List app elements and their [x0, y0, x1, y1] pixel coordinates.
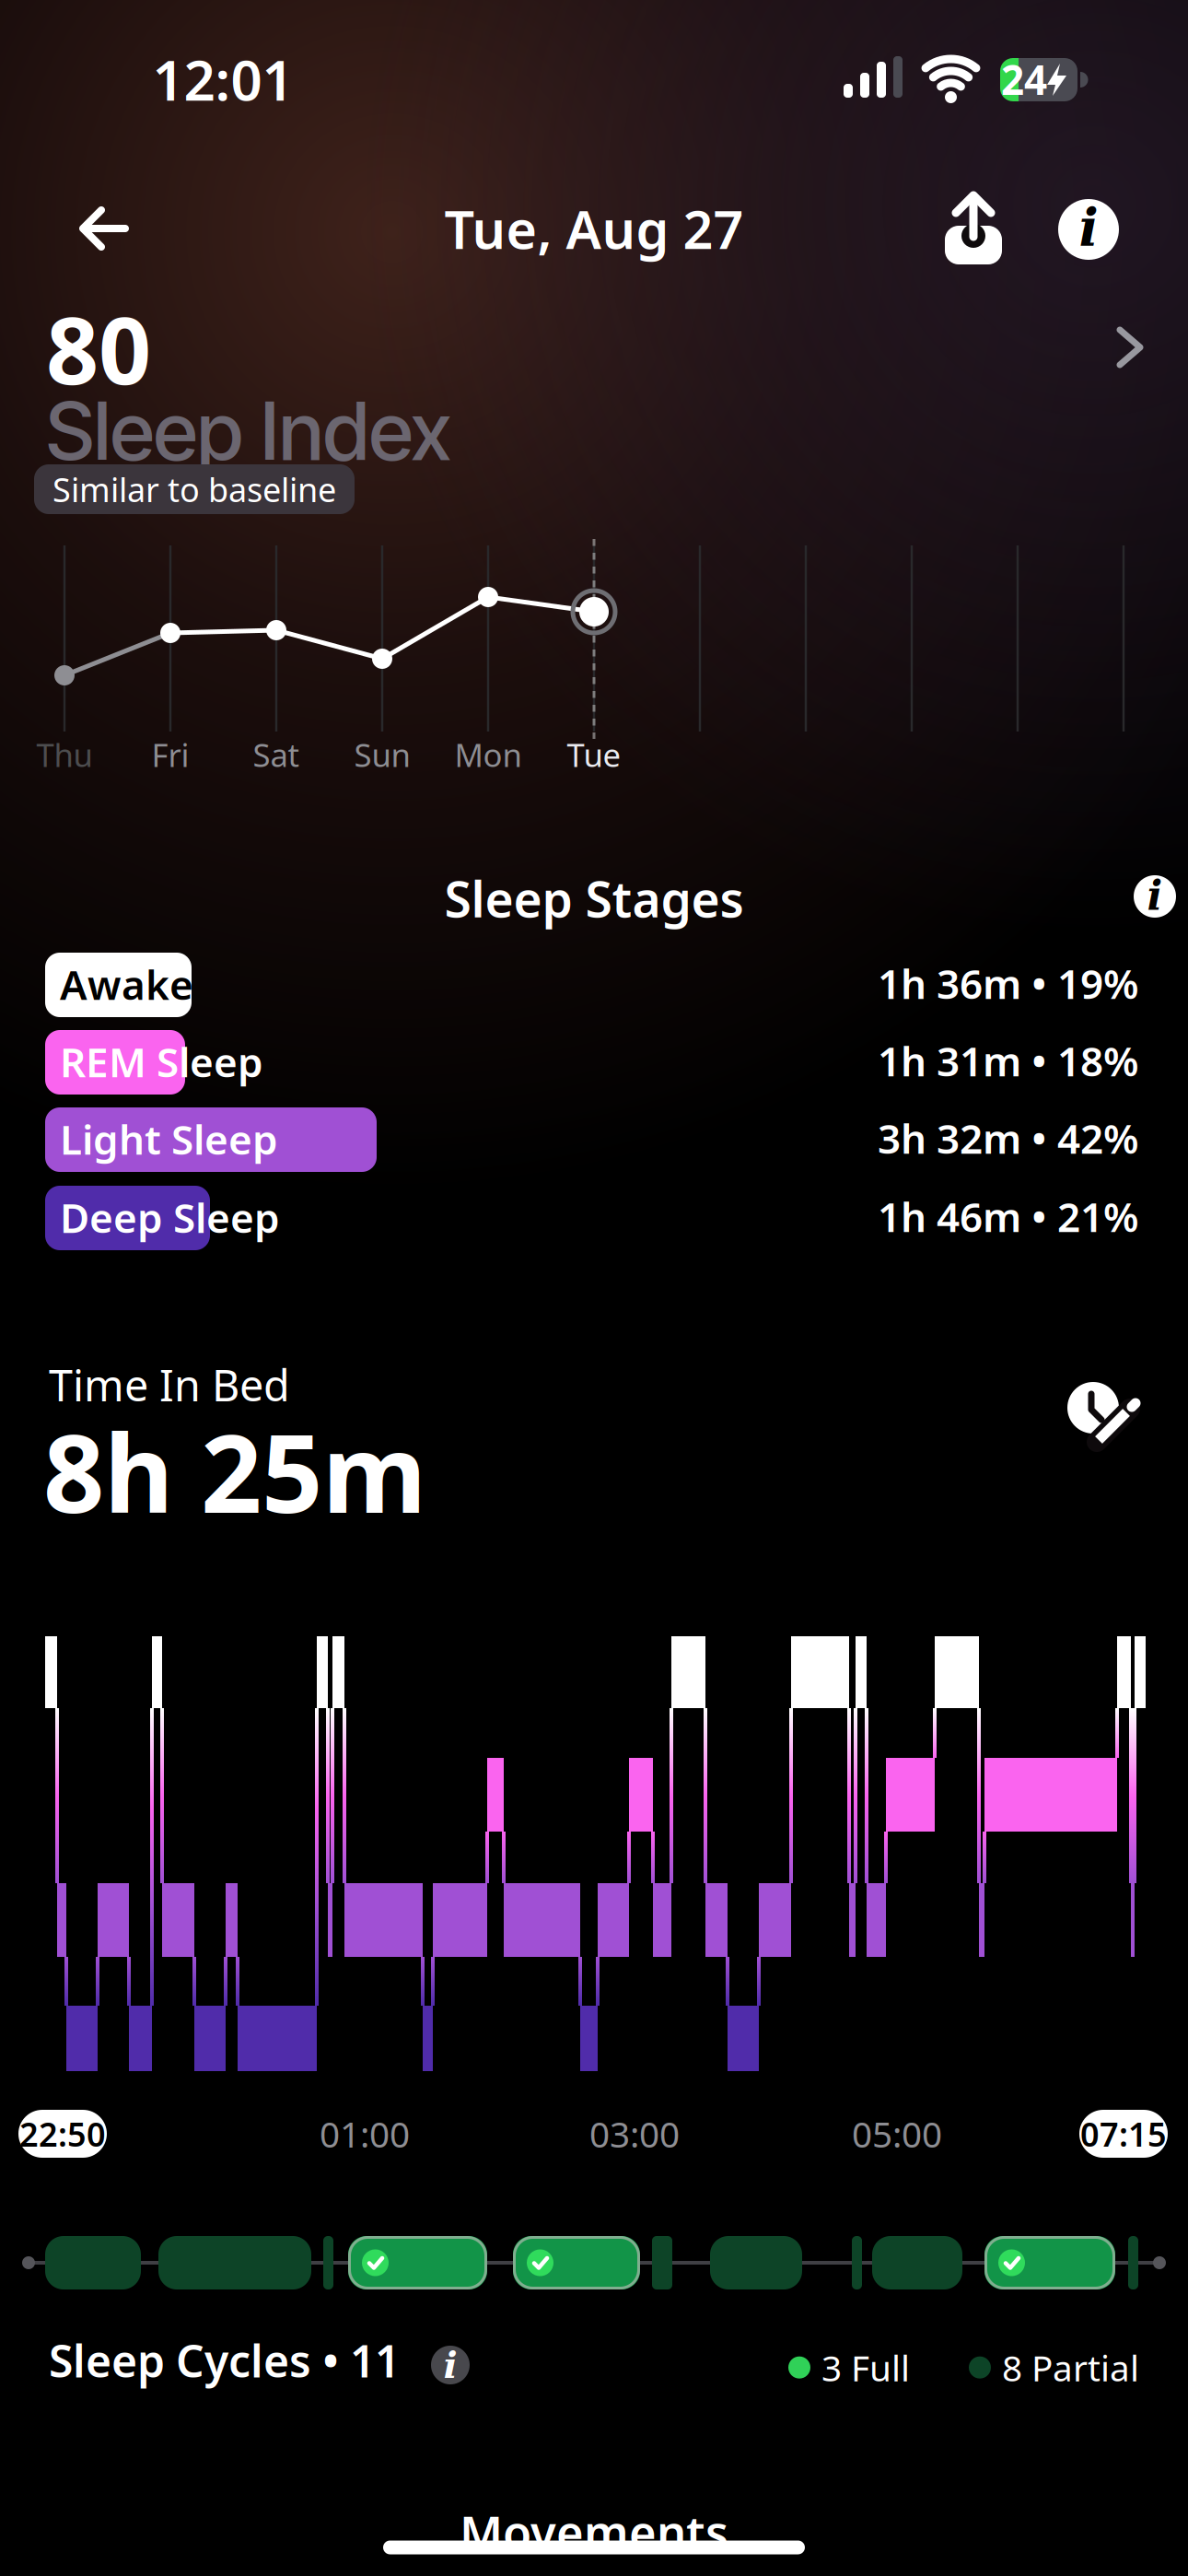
button[interactable]: 80 [34, 279, 1158, 524]
staticText: REM Sleep [60, 1035, 263, 1088]
staticText: 24 [1001, 52, 1047, 106]
staticText: Sleep Index [46, 382, 451, 479]
staticText: Movements [460, 2501, 728, 2563]
button[interactable]: Back [83, 201, 125, 256]
staticText: 07:15 [1080, 2112, 1167, 2156]
staticText: Sleep Cycles • 11 [49, 2331, 400, 2390]
staticText: 1h 46m • 21% [878, 1189, 1139, 1243]
staticText: 80 [46, 287, 151, 410]
staticText: i [1147, 872, 1163, 919]
staticText: Sat [253, 733, 300, 776]
staticText: 03:00 [589, 2110, 680, 2157]
staticText: 22:50 [19, 2112, 106, 2156]
staticText: Awake [60, 957, 193, 1011]
button[interactable]: Info [1058, 199, 1119, 260]
staticText: i [443, 2343, 457, 2387]
staticText: Tue [567, 733, 621, 776]
button[interactable]: Share [936, 189, 1009, 272]
staticText: Fri [151, 733, 189, 776]
staticText: 1h 31m • 18% [878, 1034, 1139, 1088]
staticText: 8h 25m [43, 1400, 426, 1542]
staticText: Sun [354, 733, 410, 776]
staticText: 3 Full [821, 2344, 910, 2391]
staticText: Deep Sleep [60, 1190, 280, 1244]
staticText: Thu [36, 733, 93, 776]
button[interactable]: Sleep cycles info [431, 2346, 470, 2384]
staticText: Tue, Aug 27 [444, 193, 744, 263]
staticText: 8 Partial [1002, 2344, 1139, 2391]
staticText: 3h 32m • 42% [878, 1111, 1139, 1165]
staticText: Mon [454, 733, 522, 776]
staticText: 1h 36m • 19% [878, 956, 1139, 1010]
staticText: 05:00 [852, 2110, 942, 2157]
staticText: 12:01 [152, 43, 293, 116]
button[interactable]: Sleep stages info [1134, 875, 1176, 918]
staticText: 01:00 [320, 2110, 410, 2157]
staticText: Sleep Stages [444, 866, 744, 931]
staticText: Light Sleep [60, 1112, 278, 1166]
staticText: Time In Bed [49, 1356, 290, 1413]
staticText: i [1079, 197, 1098, 258]
staticText: Similar to baseline [52, 467, 336, 511]
button[interactable]: Edit time in bed [1045, 1357, 1147, 1458]
